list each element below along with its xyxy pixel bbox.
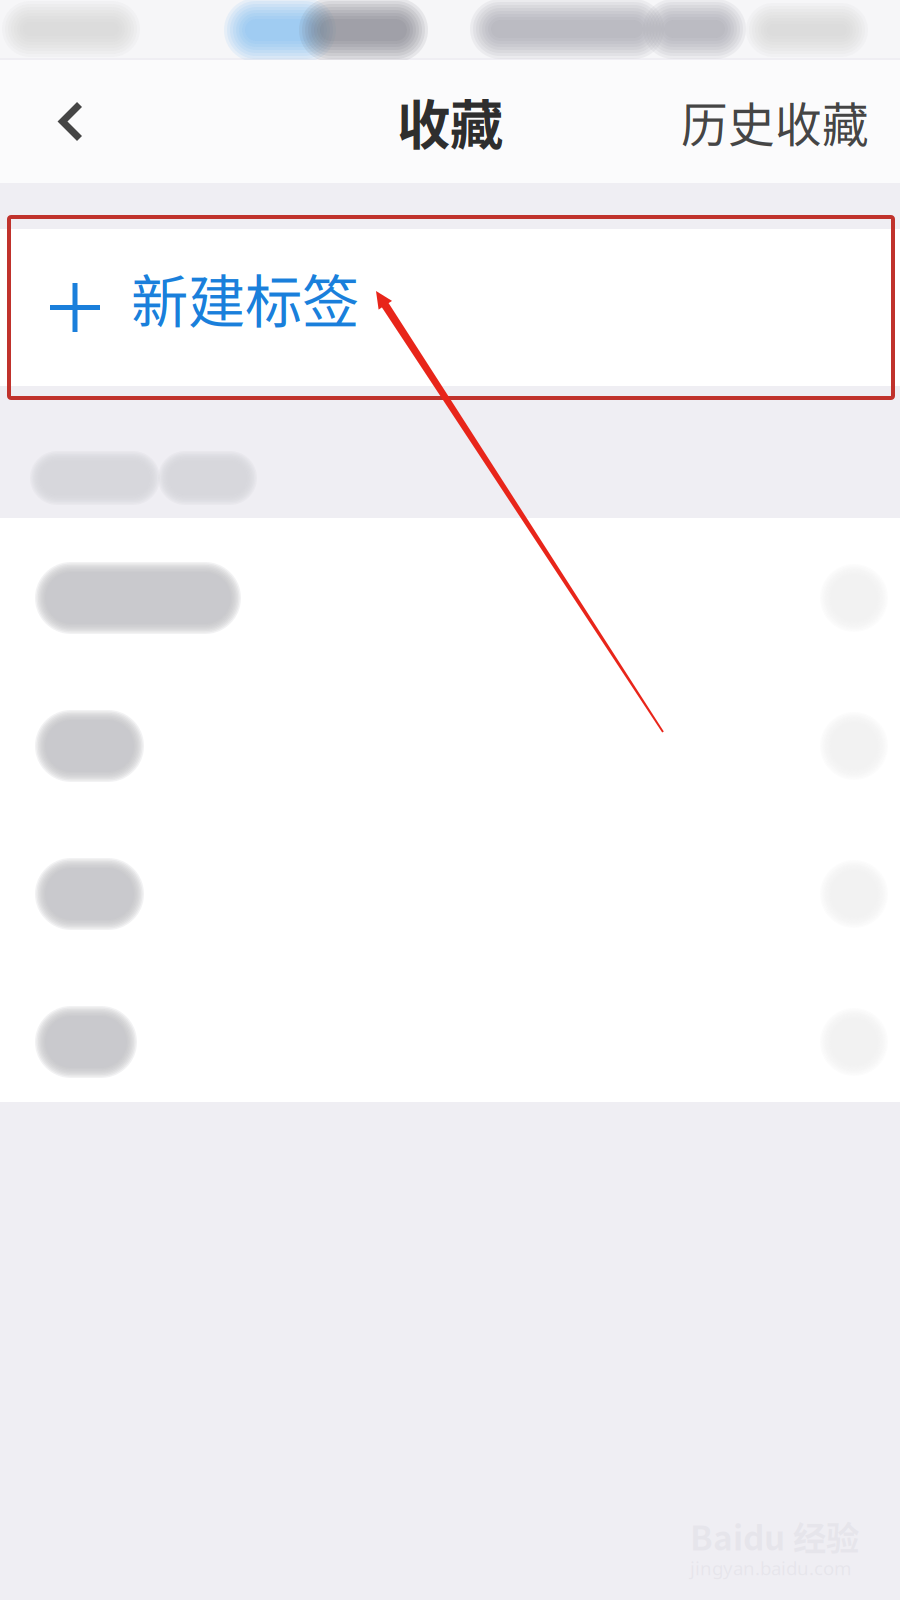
button[interactable]: Tag	[0, 518, 900, 690]
button[interactable]: 新建标签	[0, 229, 900, 386]
staticText: 历史收藏	[681, 88, 869, 155]
button[interactable]: Tag	[0, 814, 900, 986]
staticText: Baidu 经验	[690, 1512, 859, 1560]
button[interactable]: Tag	[0, 962, 900, 1134]
button[interactable]: Back	[0, 60, 142, 183]
button[interactable]: Tag	[0, 666, 900, 838]
button[interactable]: 历史收藏	[651, 60, 899, 183]
staticText: 新建标签	[131, 256, 359, 339]
staticText: 收藏	[397, 83, 503, 160]
